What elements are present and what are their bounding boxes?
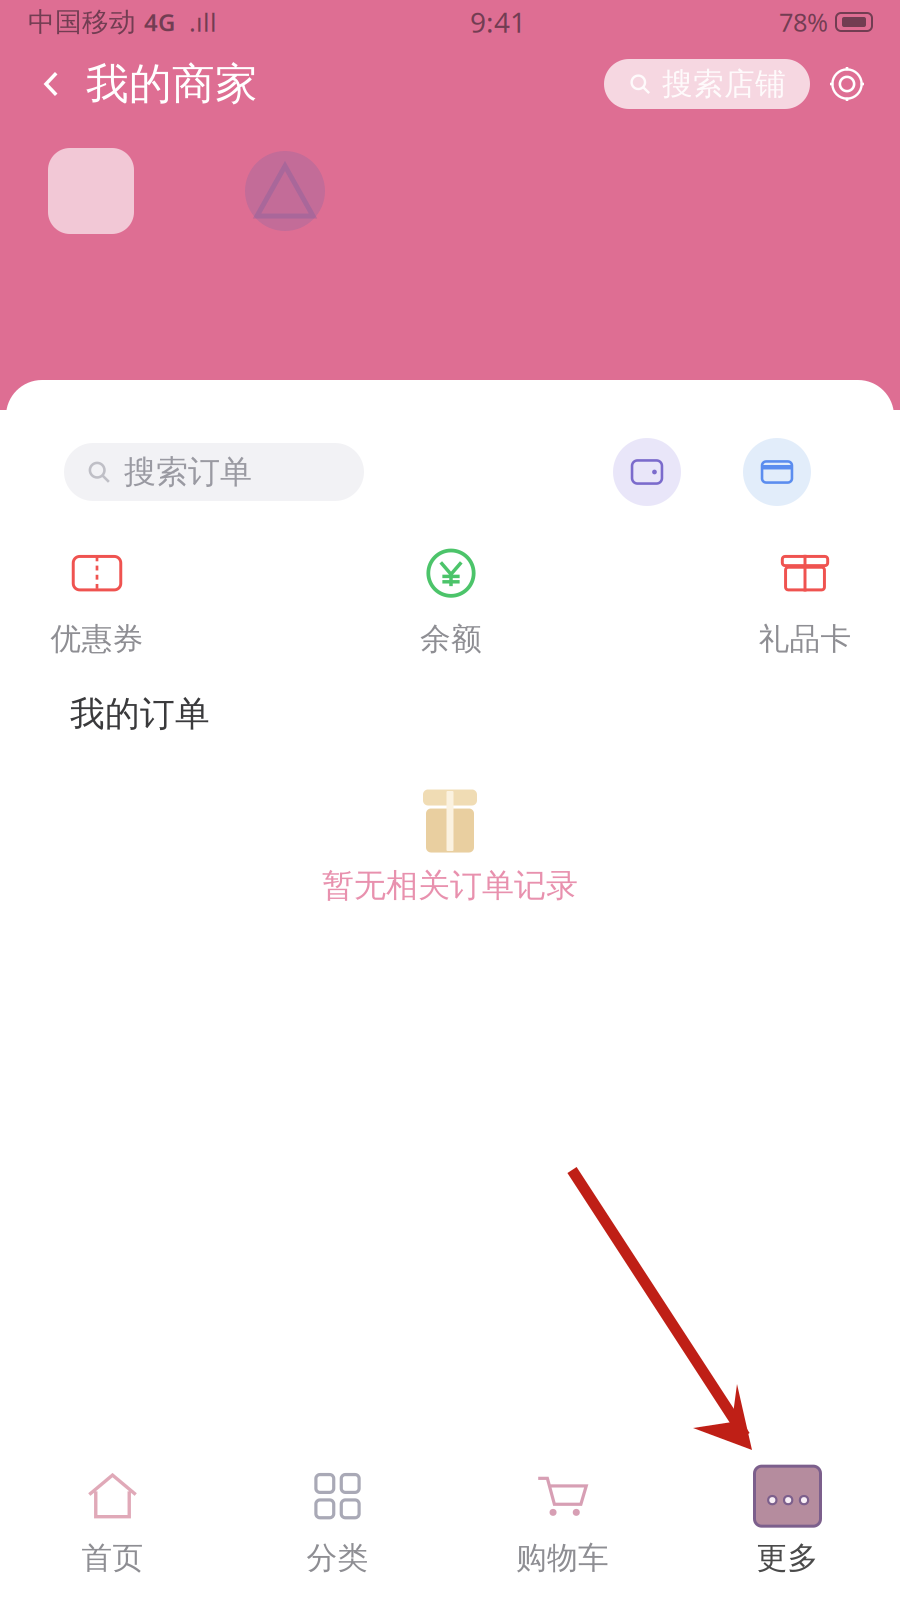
staticText: .ıll xyxy=(175,5,217,39)
button[interactable]: 优惠券 xyxy=(2,538,192,666)
staticText: 9:41 xyxy=(470,3,526,41)
staticText: 我的订单 xyxy=(70,693,210,735)
staticText: 暂无相关订单记录 xyxy=(322,866,578,905)
button[interactable]: 我的卡券 xyxy=(743,438,811,506)
button[interactable]: 更多 xyxy=(675,1440,900,1600)
button[interactable]: 搜索店铺 xyxy=(604,59,810,109)
button[interactable]: 返回 xyxy=(26,56,78,112)
button[interactable]: 设置 xyxy=(820,56,874,112)
staticText: 中国移动 xyxy=(28,6,144,38)
staticText: 首页 xyxy=(81,1539,143,1577)
staticText: 余额 xyxy=(420,620,482,658)
button[interactable]: 搜索订单 xyxy=(64,443,364,501)
button[interactable]: 礼品卡 xyxy=(710,538,900,666)
staticText: 78% xyxy=(779,5,828,39)
button[interactable]: 分类 xyxy=(225,1440,450,1600)
button[interactable]: 店铺头像 xyxy=(48,148,134,234)
staticText: 我的商家 xyxy=(86,58,258,110)
staticText: 购物车 xyxy=(516,1539,609,1577)
button[interactable]: 购物车 xyxy=(450,1440,675,1600)
staticText: 优惠券 xyxy=(50,620,143,658)
button[interactable]: 首页 xyxy=(0,1440,225,1600)
staticText: 分类 xyxy=(306,1539,368,1577)
staticText: 4G xyxy=(144,6,175,38)
staticText: 礼品卡 xyxy=(758,620,851,658)
staticText: 搜索店铺 xyxy=(662,65,786,103)
staticText: 更多 xyxy=(756,1539,818,1577)
staticText: 搜索订单 xyxy=(124,452,252,492)
button[interactable]: 余额 xyxy=(356,538,546,666)
button[interactable]: 我的钱包 xyxy=(613,438,681,506)
